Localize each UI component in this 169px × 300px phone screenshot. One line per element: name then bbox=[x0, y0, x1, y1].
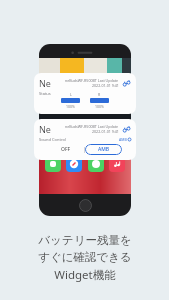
staticText: すぐに確認できる bbox=[38, 250, 132, 264]
button[interactable]: App bbox=[45, 156, 61, 172]
staticText: Status bbox=[39, 91, 51, 96]
staticText: 100% bbox=[95, 104, 104, 109]
staticText: R bbox=[98, 92, 101, 97]
staticText: 100% bbox=[66, 104, 75, 109]
staticText: Ne bbox=[39, 77, 51, 89]
staticText: Ne bbox=[39, 123, 51, 135]
button[interactable]: App bbox=[66, 156, 82, 172]
staticText: OFF bbox=[61, 146, 71, 153]
button[interactable]: Earbuds bbox=[122, 125, 131, 134]
button[interactable]: App bbox=[109, 156, 125, 172]
staticText: L bbox=[70, 92, 72, 97]
button[interactable]: App bbox=[88, 156, 104, 172]
staticText: neBudsWF-R500BT Last Update bbox=[65, 124, 119, 129]
button[interactable]: Ne bbox=[34, 119, 136, 160]
button[interactable]: Earbuds bbox=[122, 79, 131, 88]
button[interactable]: AMB bbox=[85, 144, 122, 155]
staticText: AMB bbox=[98, 146, 110, 153]
staticText: 2022-01-01 9:41 bbox=[92, 129, 119, 134]
staticText: neBudsWF-R500BT Last Update bbox=[65, 78, 119, 83]
staticText: Sound Control bbox=[39, 137, 66, 142]
button[interactable]: Ne bbox=[34, 73, 136, 114]
staticText: バッテリー残量を bbox=[38, 233, 132, 247]
staticText: Widget機能 bbox=[54, 267, 116, 283]
staticText: 2022-01-01 9:41 bbox=[92, 83, 119, 88]
staticText: AMB bbox=[119, 137, 127, 142]
button[interactable]: OFF bbox=[48, 144, 84, 155]
